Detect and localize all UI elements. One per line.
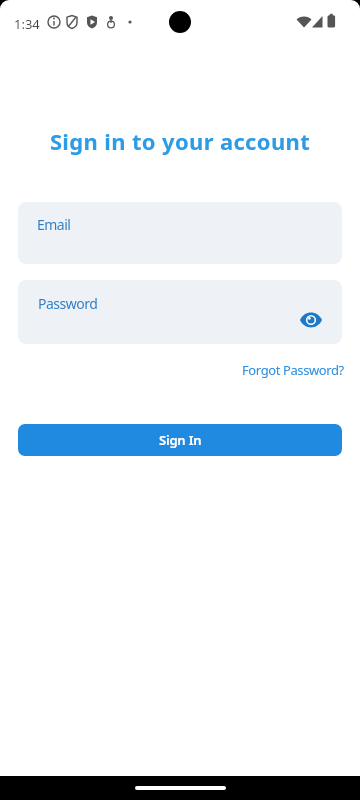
button[interactable] — [300, 312, 322, 328]
staticText: Sign in to your account — [0, 126, 360, 156]
button[interactable]: Password — [18, 280, 342, 344]
button[interactable]: Sign In — [18, 424, 342, 456]
button[interactable]: Forgot Password? — [242, 361, 344, 379]
staticText: Email — [37, 215, 71, 234]
staticText: Sign In — [159, 431, 202, 449]
staticText: 1:34 — [14, 15, 40, 33]
button[interactable]: Email — [18, 202, 342, 264]
staticText: Password — [38, 294, 98, 313]
